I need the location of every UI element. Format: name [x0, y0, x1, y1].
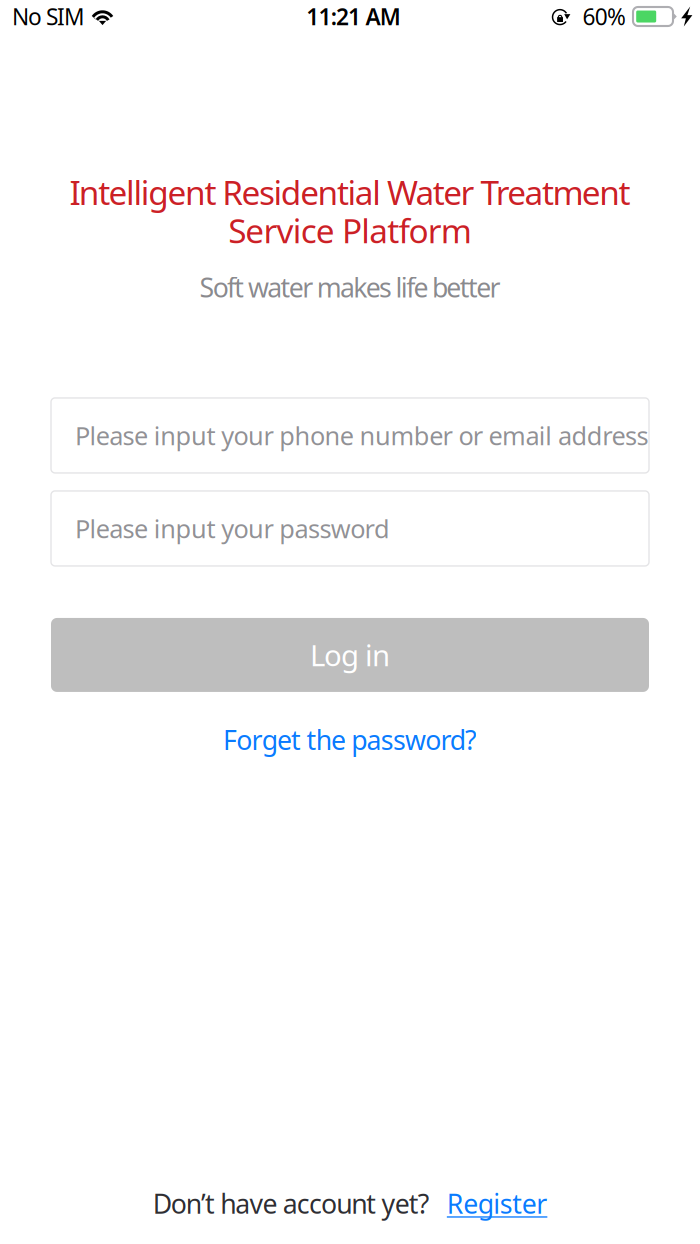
button[interactable]: Log in	[51, 618, 649, 692]
staticText: 60%	[583, 1, 626, 31]
staticText: No SIM	[12, 1, 85, 31]
staticText: Please input your password	[75, 512, 390, 545]
staticText: Register	[447, 1186, 547, 1221]
staticText: Soft water makes life better	[199, 269, 501, 305]
button[interactable]: Phone number or email address	[51, 398, 649, 473]
staticText: Forget the password?	[223, 722, 477, 757]
button[interactable]: Forget the password?	[207, 712, 493, 767]
staticText: Log in	[310, 635, 390, 674]
staticText: Please input your phone number or email …	[75, 419, 648, 452]
staticText: Intelligent Residential Water Treatment	[69, 170, 631, 214]
staticText: Service Platform	[228, 208, 472, 253]
button[interactable]: Register	[435, 1178, 559, 1229]
staticText: 11:21 AM	[306, 1, 401, 31]
button[interactable]: Password	[51, 491, 649, 566]
staticText: Don’t have account yet?	[153, 1186, 430, 1221]
